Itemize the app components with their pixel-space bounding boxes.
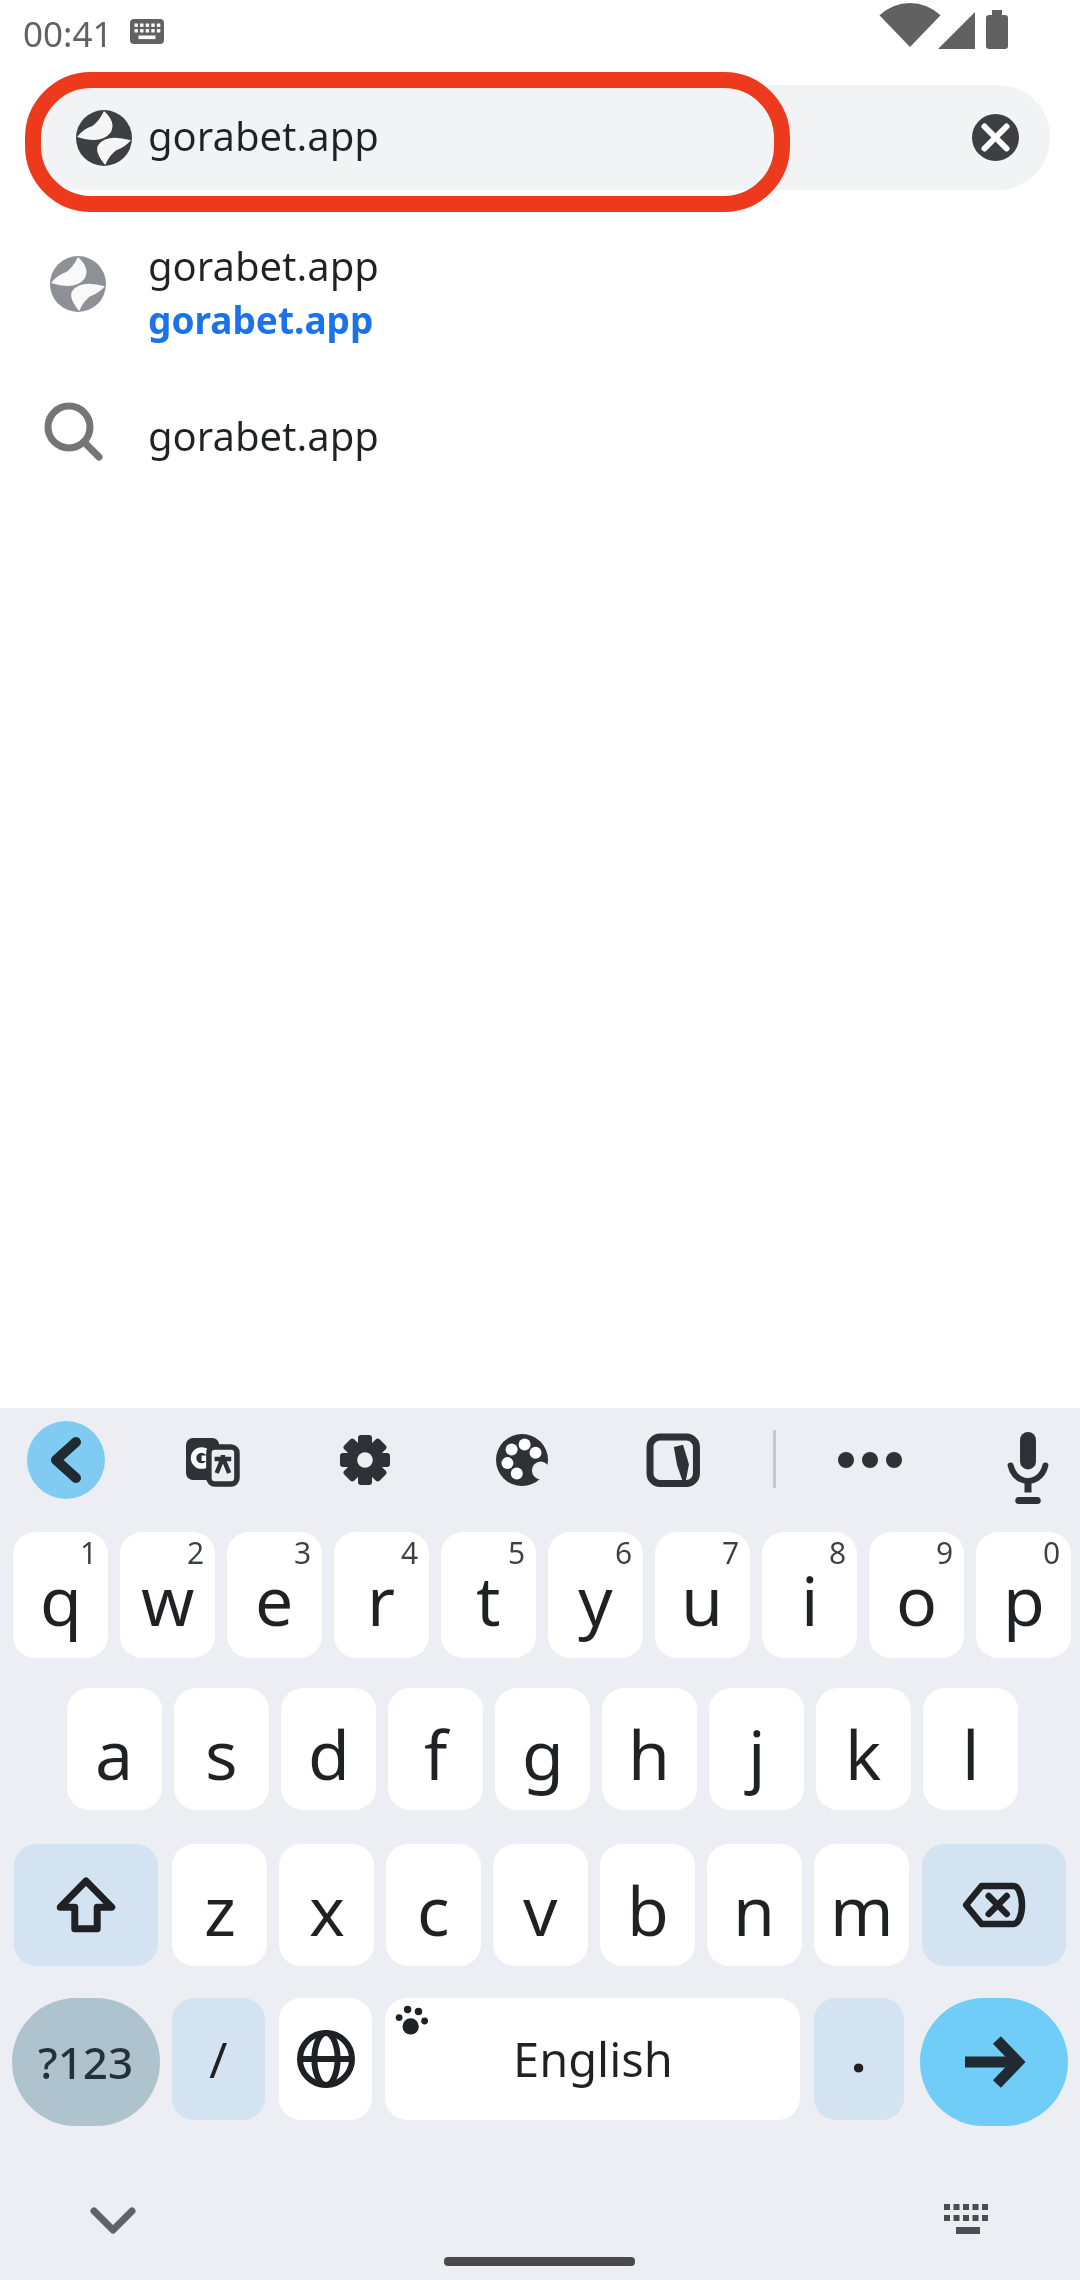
button[interactable]: w (120, 1532, 215, 1658)
staticText: / (209, 2025, 228, 2093)
staticText: o (896, 1553, 938, 1646)
button[interactable]: d (281, 1688, 376, 1810)
staticText: i (801, 1553, 819, 1646)
button[interactable]: m (814, 1844, 909, 1966)
button[interactable] (27, 1421, 105, 1499)
button[interactable]: l (923, 1688, 1018, 1810)
staticText: 2 (187, 1532, 205, 1573)
staticText: 0 (1043, 1532, 1061, 1573)
button[interactable]: n (707, 1844, 802, 1966)
staticText: 7 (722, 1532, 740, 1573)
button[interactable]: k (816, 1688, 911, 1810)
button[interactable]: h (602, 1688, 697, 1810)
staticText: t (476, 1553, 501, 1646)
button[interactable]: gorabet.app (30, 85, 1050, 190)
staticText: u (681, 1553, 724, 1646)
staticText: b (627, 1863, 669, 1956)
button[interactable]: b (600, 1844, 695, 1966)
staticText: 8 (829, 1532, 847, 1573)
button[interactable] (496, 1434, 548, 1486)
staticText: 00:41 (23, 10, 113, 58)
staticText: p (1003, 1553, 1045, 1646)
button[interactable] (920, 1998, 1068, 2126)
button[interactable] (279, 1998, 372, 2120)
button[interactable]: i (762, 1532, 857, 1658)
staticText: l (962, 1707, 980, 1800)
button[interactable] (91, 2208, 135, 2234)
staticText: 9 (936, 1532, 954, 1573)
staticText: gorabet.app (148, 238, 379, 292)
staticText: 6 (615, 1532, 633, 1573)
staticText: 1 (80, 1532, 98, 1573)
button[interactable]: gorabet.app (0, 228, 1080, 353)
staticText: . (851, 2014, 867, 2088)
button[interactable]: s (174, 1688, 269, 1810)
staticText: h (628, 1707, 671, 1800)
button[interactable] (649, 1434, 703, 1488)
button[interactable]: ?123 (12, 1998, 160, 2126)
button[interactable]: j (709, 1688, 804, 1810)
button[interactable]: z (172, 1844, 267, 1966)
staticText: y (578, 1553, 613, 1646)
button[interactable]: x (279, 1844, 374, 1966)
button[interactable]: gorabet.app (0, 375, 1080, 490)
staticText: 4 (401, 1532, 419, 1573)
staticText: 3 (294, 1532, 312, 1573)
staticText: f (424, 1707, 448, 1800)
staticText: gorabet.app (148, 294, 374, 344)
button[interactable] (944, 2204, 988, 2234)
staticText: English (513, 2027, 673, 2091)
button[interactable]: q (13, 1532, 108, 1658)
button[interactable]: g (495, 1688, 590, 1810)
staticText: j (748, 1707, 766, 1800)
button[interactable]: u (655, 1532, 750, 1658)
button[interactable] (339, 1434, 391, 1486)
button[interactable]: t (441, 1532, 536, 1658)
staticText: n (733, 1863, 776, 1956)
staticText: q (40, 1553, 82, 1646)
button[interactable]: . (814, 1998, 904, 2120)
staticText: r (367, 1553, 396, 1646)
button[interactable]: r (334, 1532, 429, 1658)
button[interactable]: p (976, 1532, 1071, 1658)
button[interactable]: e (227, 1532, 322, 1658)
staticText: s (205, 1707, 238, 1800)
staticText: 5 (508, 1532, 526, 1573)
staticText: w (141, 1553, 195, 1646)
staticText: v (523, 1863, 558, 1956)
button[interactable] (972, 114, 1019, 161)
button[interactable]: / (172, 1998, 265, 2120)
staticText: ?123 (38, 2032, 134, 2092)
staticText: d (308, 1707, 350, 1800)
button[interactable] (14, 1844, 158, 1966)
button[interactable]: c (386, 1844, 481, 1966)
button[interactable] (838, 1452, 902, 1468)
button[interactable]: o (869, 1532, 964, 1658)
button[interactable] (1007, 1432, 1049, 1504)
staticText: z (204, 1863, 236, 1956)
button[interactable]: v (493, 1844, 588, 1966)
staticText: c (417, 1863, 450, 1956)
button[interactable]: y (548, 1532, 643, 1658)
staticText: gorabet.app (148, 108, 379, 162)
button[interactable]: a (67, 1688, 162, 1810)
staticText: k (845, 1707, 882, 1800)
button[interactable]: English (385, 1998, 800, 2120)
staticText: m (830, 1863, 894, 1956)
button[interactable] (186, 1436, 238, 1486)
staticText: x (309, 1863, 345, 1956)
staticText: g (522, 1707, 564, 1800)
staticText: gorabet.app (148, 408, 379, 462)
staticText: a (95, 1707, 134, 1800)
staticText: e (255, 1553, 294, 1646)
button[interactable]: f (388, 1688, 483, 1810)
button[interactable] (922, 1844, 1066, 1966)
